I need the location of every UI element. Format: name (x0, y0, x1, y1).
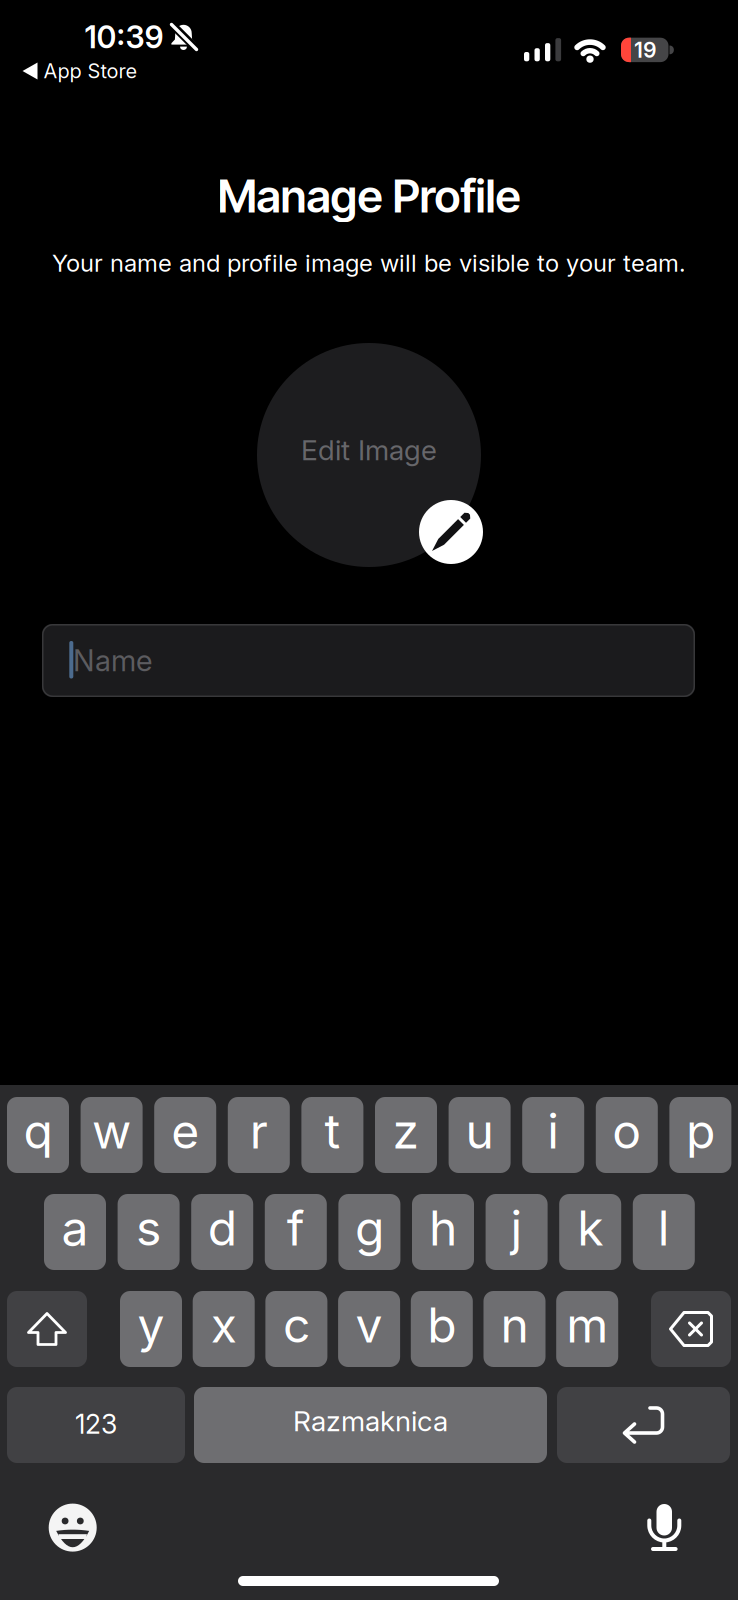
button[interactable]: g (338, 1194, 400, 1270)
button[interactable]: c (265, 1291, 327, 1367)
button[interactable]: b (411, 1291, 473, 1367)
button[interactable]: k (559, 1194, 621, 1270)
button[interactable]: p (669, 1097, 731, 1173)
staticText: p (686, 1103, 715, 1159)
staticText: n (500, 1297, 528, 1353)
staticText: f (287, 1200, 305, 1256)
staticText: Edit Image (301, 433, 437, 466)
button[interactable]: t (301, 1097, 363, 1173)
button[interactable]: 123 (7, 1387, 185, 1463)
staticText: q (23, 1103, 52, 1159)
staticText: z (392, 1103, 419, 1159)
button[interactable]: x (193, 1291, 255, 1367)
button[interactable]: h (412, 1194, 474, 1270)
staticText: h (429, 1200, 457, 1256)
staticText: w (92, 1103, 131, 1159)
staticText: t (324, 1103, 340, 1159)
button[interactable]: a (44, 1194, 106, 1270)
staticText: m (566, 1297, 608, 1353)
staticText: r (250, 1103, 268, 1159)
button[interactable]: Delete (651, 1291, 731, 1367)
button[interactable]: u (449, 1097, 511, 1173)
staticText: Name (73, 643, 152, 678)
staticText: Razmaknica (293, 1404, 448, 1437)
button[interactable]: n (483, 1291, 545, 1367)
staticText: Manage Profile (217, 169, 520, 223)
staticText: Your name and profile image will be visi… (52, 249, 686, 277)
button[interactable]: Razmaknica (194, 1387, 547, 1463)
staticText: c (283, 1297, 310, 1353)
button[interactable]: s (118, 1194, 180, 1270)
button[interactable]: m (556, 1291, 618, 1367)
staticText: 19 (634, 37, 657, 63)
button[interactable]: w (81, 1097, 143, 1173)
button[interactable]: o (596, 1097, 658, 1173)
button[interactable]: j (486, 1194, 548, 1270)
button[interactable]: Return (557, 1387, 730, 1463)
button[interactable]: y (120, 1291, 182, 1367)
staticText: a (61, 1200, 88, 1256)
button[interactable]: l (633, 1194, 695, 1270)
staticText: b (427, 1297, 456, 1353)
staticText: d (208, 1200, 237, 1256)
button[interactable]: e (154, 1097, 216, 1173)
staticText: u (466, 1103, 494, 1159)
staticText: o (612, 1103, 641, 1159)
button[interactable]: q (7, 1097, 69, 1173)
button[interactable]: Edit Image (257, 343, 481, 567)
button[interactable]: z (375, 1097, 437, 1173)
button[interactable]: v (338, 1291, 400, 1367)
button[interactable]: Name (42, 624, 695, 697)
staticText: k (577, 1200, 603, 1256)
staticText: s (136, 1200, 161, 1256)
button[interactable]: d (191, 1194, 253, 1270)
staticText: 123 (75, 1408, 117, 1440)
staticText: j (511, 1200, 523, 1256)
button[interactable]: Shift (7, 1291, 87, 1367)
button[interactable]: Dictate (643, 1504, 686, 1552)
staticText: g (355, 1200, 384, 1256)
staticText: v (356, 1297, 383, 1353)
button[interactable]: Edit (419, 500, 483, 564)
button[interactable]: r (228, 1097, 290, 1173)
staticText: x (211, 1297, 237, 1353)
staticText: l (658, 1200, 670, 1256)
staticText: y (137, 1297, 164, 1353)
staticText: i (547, 1103, 559, 1159)
button[interactable]: f (265, 1194, 327, 1270)
staticText: 10:39 (84, 19, 163, 55)
button[interactable]: Emoji (49, 1504, 97, 1552)
staticText: App Store (43, 59, 137, 83)
staticText: e (171, 1103, 199, 1159)
button[interactable]: Back to App Store (22, 53, 154, 89)
button[interactable]: i (522, 1097, 584, 1173)
